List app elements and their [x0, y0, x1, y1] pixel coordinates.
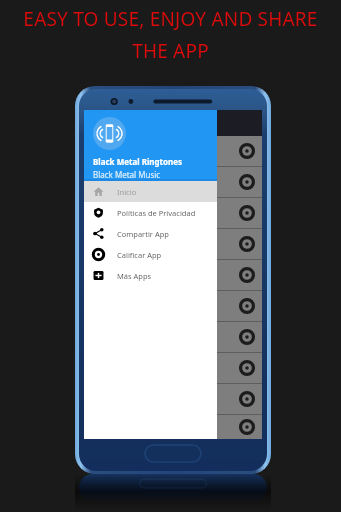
- button[interactable]: Compartir App: [84, 223, 217, 244]
- staticText: Compartir App: [117, 229, 169, 239]
- staticText: Nocturnal doom -: [92, 270, 150, 280]
- staticText: Inicio: [117, 187, 137, 197]
- button[interactable]: Ancient throne: [84, 291, 262, 321]
- staticText: Calificar App: [117, 250, 162, 260]
- button[interactable]: Black Metal Ringtones: [84, 110, 217, 179]
- button[interactable]: Shadow blade: [84, 415, 262, 439]
- button[interactable]: Calificar App: [84, 244, 217, 265]
- staticText: Black Metal terror: [92, 146, 151, 156]
- staticText: Black Metal Music: [93, 169, 161, 179]
- staticText: Black Metal Ringtones: [93, 156, 183, 167]
- button[interactable]: Frost moon: [84, 229, 262, 259]
- staticText: Políticas de Privacidad: [117, 208, 196, 218]
- button[interactable]: Heavy riff call: [84, 198, 262, 228]
- button[interactable]: Inicio: [84, 181, 217, 202]
- staticText: Más Apps: [117, 271, 152, 281]
- button[interactable]: Winter howl: [84, 322, 262, 352]
- staticText: THE APP: [132, 38, 209, 64]
- button[interactable]: Funeral bell: [84, 384, 262, 414]
- button[interactable]: Dark ritual tone: [84, 167, 262, 197]
- button[interactable]: Black Metal terror: [84, 136, 262, 166]
- staticText: EASY TO USE, ENJOY AND SHARE: [23, 6, 318, 32]
- button[interactable]: Nocturnal doom -: [84, 260, 262, 290]
- staticText: Heavy riff call: [92, 208, 137, 218]
- button[interactable]: Políticas de Privacidad: [84, 202, 217, 223]
- staticText: Frost moon: [92, 239, 130, 249]
- button[interactable]: Más Apps: [84, 265, 217, 286]
- button[interactable]: Crimson mass: [84, 353, 262, 383]
- staticText: Dark ritual tone: [92, 177, 144, 187]
